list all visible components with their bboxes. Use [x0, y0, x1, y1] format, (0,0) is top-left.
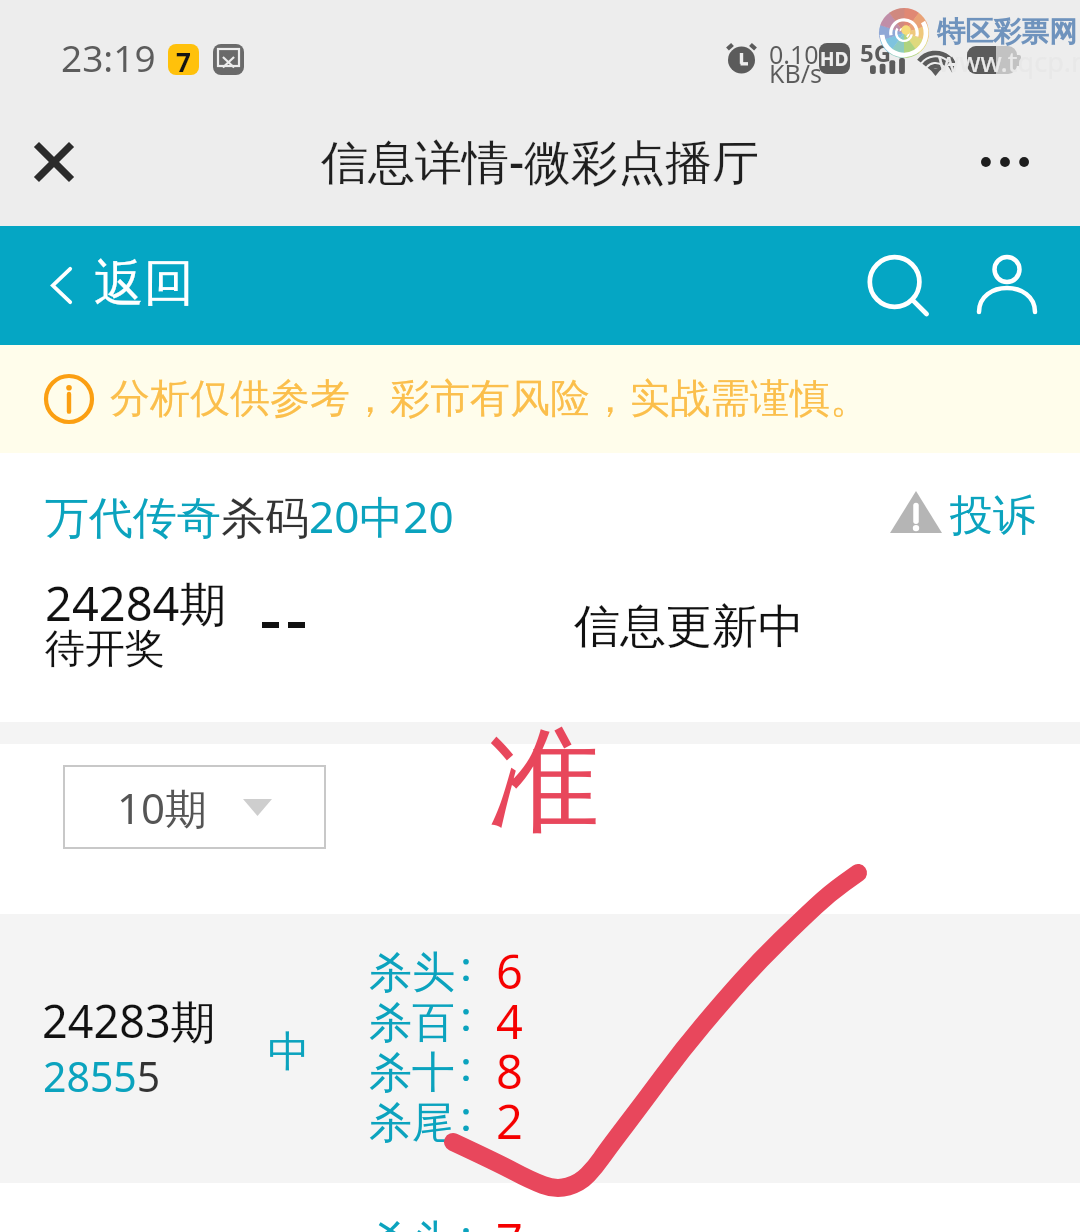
staticText: 信息详情-微彩点播厅	[321, 129, 760, 193]
staticText: 28555	[43, 1048, 161, 1104]
staticText: 23:19	[61, 32, 156, 82]
staticText: 24284期	[45, 571, 227, 635]
staticText: 10期	[117, 779, 208, 836]
staticText: 万代传奇杀码20中20	[45, 486, 454, 546]
staticText: 分析仅供参考，彩市有风险，实战需谨慎。	[110, 373, 870, 423]
staticText: 待开奖	[45, 623, 165, 673]
button[interactable]: 10期	[63, 765, 326, 849]
button[interactable]: 投诉	[888, 485, 1036, 539]
staticText: 返回	[94, 252, 194, 315]
staticText: 信息更新中	[574, 598, 804, 656]
staticText: 投诉	[950, 489, 1036, 543]
button[interactable]: 返回	[30, 226, 210, 345]
staticText: 2	[496, 1089, 523, 1139]
button[interactable]: Close	[0, 115, 110, 225]
staticText: 8	[496, 1039, 523, 1089]
staticText: HD	[820, 46, 849, 72]
staticText: 7	[496, 1208, 523, 1232]
staticText: KB/s	[769, 56, 823, 90]
staticText: 杀十	[369, 1046, 455, 1096]
staticText: 0.10	[769, 37, 819, 71]
staticText: 准	[487, 711, 600, 853]
staticText: 4	[496, 989, 523, 1039]
staticText: 杀头	[369, 946, 455, 996]
button[interactable]: Search	[845, 226, 945, 345]
staticText: 杀百	[369, 996, 455, 1046]
staticText: 6	[496, 939, 523, 989]
staticText: 特区彩票网	[937, 14, 1077, 49]
staticText: 中	[268, 1026, 310, 1079]
staticText: 5G	[860, 36, 892, 69]
button[interactable]: More options	[950, 115, 1060, 225]
staticText: 杀头	[369, 1215, 455, 1232]
staticText: www.tqcp.net	[938, 43, 1080, 80]
staticText: 杀尾	[369, 1096, 455, 1146]
staticText: 24283期	[42, 990, 216, 1051]
staticText: 7	[176, 44, 191, 75]
button[interactable]: Account	[955, 226, 1055, 345]
